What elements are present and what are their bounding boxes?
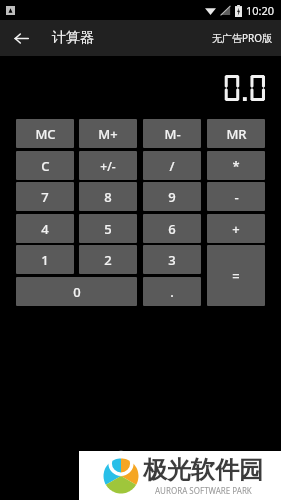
button[interactable]: +/- [79,151,137,180]
staticText: * [232,157,240,175]
button[interactable]: 9 [143,182,201,211]
staticText: . [170,283,174,301]
staticText: = [232,267,240,285]
staticText: M+ [98,125,118,143]
staticText: 6 [168,220,176,238]
staticText: 10:20 [246,3,275,18]
staticText: MR [226,125,247,143]
button[interactable]: 7 [16,182,74,211]
staticText: / [169,157,175,175]
button[interactable]: MR [207,119,265,148]
staticText: 9 [168,188,176,206]
button[interactable]: 6 [143,214,201,243]
button[interactable]: . [143,277,201,306]
button[interactable]: C [16,151,74,180]
staticText: 无广告PRO版 [212,31,273,45]
button[interactable]: 5 [79,214,137,243]
button[interactable]: * [207,151,265,180]
staticText: M- [164,125,181,143]
button[interactable]: 1 [16,245,74,274]
staticText: 0 [73,283,81,301]
staticText: 7 [41,188,49,206]
button[interactable]: / [143,151,201,180]
staticText: 1 [41,251,49,269]
staticText: MC [35,125,56,143]
button[interactable]: 2 [79,245,137,274]
button[interactable]: = [207,245,265,306]
button[interactable]: - [207,182,265,211]
button[interactable]: 3 [143,245,201,274]
button[interactable]: M+ [79,119,137,148]
staticText: +/- [100,158,116,174]
staticText: 计算器 [52,29,94,47]
button[interactable]: 8 [79,182,137,211]
staticText: 5 [104,220,112,238]
staticText: - [234,188,239,206]
staticText: 3 [168,251,176,269]
staticText: 4 [41,220,49,238]
button[interactable]: 4 [16,214,74,243]
button[interactable]: MC [16,119,74,148]
button[interactable]: 0 [16,277,137,306]
button[interactable]: + [207,214,265,243]
staticText: 8 [104,188,112,206]
staticText: C [41,157,50,175]
button[interactable]: M- [143,119,201,148]
staticText: + [232,220,240,238]
button[interactable]: Back [7,24,35,52]
staticText: AURORA SOFTWARE PARK [155,485,252,496]
button[interactable]: 无广告PRO版 [204,25,281,51]
staticText: 2 [104,251,112,269]
staticText: 极光软件园 [143,455,263,485]
